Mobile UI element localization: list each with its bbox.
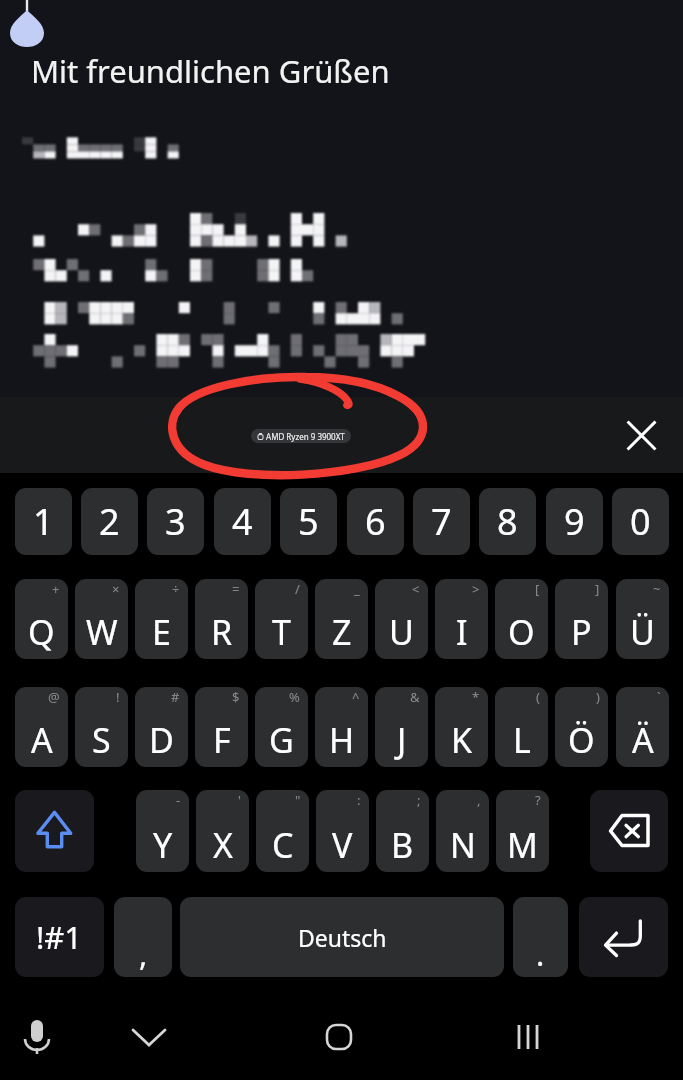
staticText: Z: [332, 609, 352, 655]
staticText: /: [295, 580, 300, 598]
button[interactable]: Voice input: [13, 1013, 61, 1061]
button[interactable]: 9: [546, 488, 603, 555]
staticText: G: [269, 717, 294, 763]
button[interactable]: ": [256, 790, 309, 872]
staticText: +: [52, 580, 60, 598]
button[interactable]: 5: [280, 488, 337, 555]
button[interactable]: Close suggestion: [619, 413, 664, 458]
button[interactable]: 2: [81, 488, 138, 555]
button[interactable]: /: [255, 579, 308, 659]
staticText: !: [116, 688, 120, 706]
button[interactable]: 7: [413, 488, 470, 555]
staticText: *: [472, 688, 480, 706]
button[interactable]: #: [135, 687, 188, 767]
button[interactable]: Enter: [579, 897, 668, 977]
staticText: Mit freundlichen Grüßen: [31, 50, 390, 92]
button[interactable]: Backspace: [590, 790, 668, 872]
staticText: 3: [165, 497, 186, 546]
staticText: `: [657, 688, 661, 706]
staticText: Ä: [632, 717, 654, 763]
staticText: AMD Ryzen 9 3900XT: [264, 431, 345, 442]
button[interactable]: Shift: [15, 790, 94, 872]
staticText: #: [171, 688, 180, 706]
button[interactable]: ×: [75, 579, 128, 659]
staticText: ,: [139, 933, 148, 975]
staticText: P: [571, 609, 592, 655]
button[interactable]: Recent apps: [504, 1013, 552, 1061]
button[interactable]: ]: [555, 579, 608, 659]
button[interactable]: !: [75, 687, 128, 767]
button[interactable]: ': [196, 790, 249, 872]
staticText: 7: [431, 497, 452, 546]
staticText: L: [513, 717, 531, 763]
staticText: _: [354, 580, 360, 598]
staticText: ~: [653, 580, 661, 598]
button[interactable]: Deutsch: [180, 897, 504, 977]
button[interactable]: AMD Ryzen 9 3900XT: [251, 429, 351, 443]
button[interactable]: ~: [616, 579, 669, 659]
button[interactable]: `: [616, 687, 669, 767]
button[interactable]: -: [136, 790, 189, 872]
staticText: (: [536, 688, 540, 706]
button[interactable]: 4: [214, 488, 271, 555]
staticText: -: [176, 791, 181, 809]
button[interactable]: ÷: [135, 579, 188, 659]
button[interactable]: &: [375, 687, 428, 767]
staticText: ^: [352, 688, 360, 706]
button[interactable]: ): [555, 687, 608, 767]
button[interactable]: =: [195, 579, 248, 659]
button[interactable]: :: [316, 790, 369, 872]
button[interactable]: %: [255, 687, 308, 767]
staticText: 8: [497, 497, 518, 546]
button[interactable]: !#1: [15, 897, 104, 977]
button[interactable]: 3: [147, 488, 204, 555]
staticText: O: [508, 609, 535, 655]
staticText: ÷: [172, 580, 180, 598]
button[interactable]: ,: [436, 790, 489, 872]
staticText: V: [332, 822, 353, 868]
button[interactable]: 0: [612, 488, 669, 555]
staticText: X: [213, 822, 233, 868]
button[interactable]: $: [195, 687, 248, 767]
button[interactable]: 8: [479, 488, 536, 555]
button[interactable]: Hide keyboard: [125, 1013, 173, 1061]
staticText: &: [410, 688, 420, 706]
staticText: C: [272, 822, 294, 868]
staticText: $: [232, 688, 240, 706]
staticText: H: [329, 717, 355, 763]
button[interactable]: (: [495, 687, 548, 767]
button[interactable]: _: [315, 579, 368, 659]
staticText: !#1: [36, 916, 83, 958]
staticText: U: [389, 609, 414, 655]
staticText: :: [357, 791, 361, 809]
button[interactable]: 6: [347, 488, 404, 555]
button[interactable]: @: [15, 687, 68, 767]
staticText: K: [451, 717, 473, 763]
button[interactable]: ^: [315, 687, 368, 767]
staticText: Q: [28, 609, 55, 655]
button[interactable]: <: [375, 579, 428, 659]
staticText: I: [456, 609, 468, 655]
staticText: >: [472, 580, 480, 598]
button[interactable]: ?: [496, 790, 549, 872]
button[interactable]: +: [15, 579, 68, 659]
staticText: ;: [417, 791, 421, 809]
button[interactable]: [: [495, 579, 548, 659]
staticText: M: [507, 822, 538, 868]
button[interactable]: 1: [15, 488, 72, 555]
staticText: D: [149, 717, 174, 763]
staticText: ): [596, 688, 600, 706]
button[interactable]: Home: [315, 1013, 363, 1061]
button[interactable]: .: [513, 897, 568, 977]
staticText: B: [391, 822, 414, 868]
staticText: Y: [153, 822, 173, 868]
button[interactable]: *: [435, 687, 488, 767]
button[interactable]: ;: [376, 790, 429, 872]
staticText: J: [397, 717, 407, 763]
staticText: T: [272, 609, 291, 655]
staticText: ?: [535, 791, 541, 809]
button[interactable]: >: [435, 579, 488, 659]
staticText: 9: [564, 497, 585, 546]
staticText: ]: [595, 580, 600, 598]
button[interactable]: ,: [114, 897, 172, 977]
